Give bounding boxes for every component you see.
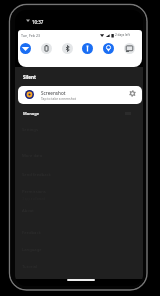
button[interactable]: Quick setting 5 (103, 43, 114, 54)
button[interactable]: Quick setting 2 (41, 43, 52, 54)
staticText: Manage (23, 111, 40, 116)
button[interactable]: Notification settings (129, 90, 136, 97)
staticText: Tap to take screenshot (41, 96, 76, 100)
button[interactable]: Screenshot (18, 86, 142, 104)
staticText: 2 days left (115, 33, 130, 37)
staticText: Tue, Feb 23 (21, 33, 41, 38)
staticText: 10:37 (32, 19, 44, 25)
button[interactable]: Manage (23, 111, 40, 116)
button[interactable]: Quick setting 3 (62, 43, 73, 54)
staticText: Screenshot (41, 90, 66, 96)
button[interactable]: Quick setting 1 (20, 43, 31, 54)
staticText: Silent (23, 74, 36, 80)
button[interactable]: Quick setting 6 (124, 43, 135, 54)
button[interactable]: Quick setting 4 (82, 43, 93, 54)
